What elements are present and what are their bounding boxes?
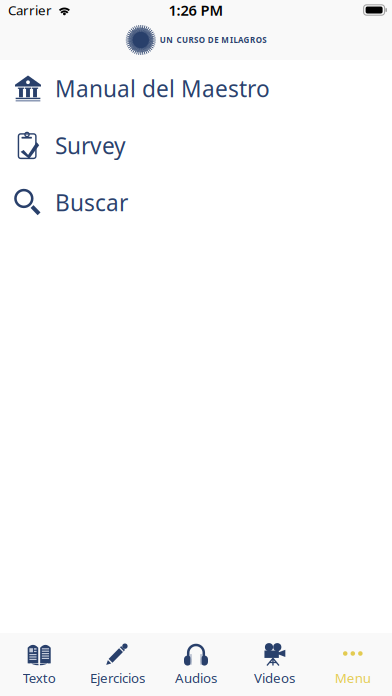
button[interactable]: Manual del Maestro [0, 60, 392, 117]
staticText: Carrier [8, 1, 52, 19]
staticText: Texto [23, 669, 56, 687]
button[interactable]: Videos [235, 633, 314, 696]
staticText: Manual del Maestro [55, 73, 270, 103]
button[interactable]: Survey [0, 117, 392, 174]
button[interactable]: Texto [0, 633, 78, 696]
staticText: UN CURSO DE MILAGROS [160, 35, 266, 45]
staticText: 1:26 PM [168, 0, 223, 20]
staticText: Videos [254, 669, 295, 687]
staticText: Ejercicios [90, 669, 145, 687]
button[interactable]: Menu [314, 633, 392, 696]
button[interactable]: Audios [157, 633, 235, 696]
button[interactable]: Buscar [0, 174, 392, 231]
button[interactable]: Ejercicios [78, 633, 157, 696]
staticText: Survey [55, 130, 126, 160]
staticText: Audios [175, 669, 217, 687]
staticText: Menu [335, 669, 371, 687]
staticText: Buscar [55, 187, 128, 217]
